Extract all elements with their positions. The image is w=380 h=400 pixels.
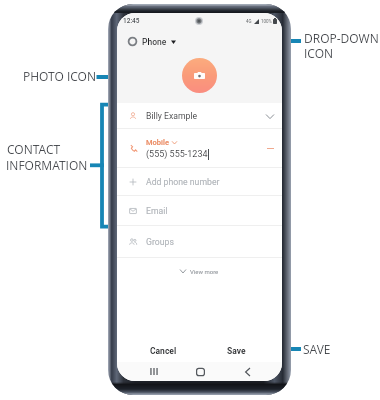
staticText: Email — [146, 206, 168, 216]
staticText: CONTACT — [7, 141, 61, 157]
staticText: ICON — [304, 45, 334, 61]
button[interactable]: Home — [187, 364, 213, 379]
staticText: Groups — [146, 237, 174, 247]
button[interactable]: Recent apps — [141, 364, 167, 379]
button[interactable]: Email — [117, 196, 282, 226]
staticText: Phone — [142, 37, 167, 47]
button[interactable]: Billy Example — [117, 103, 282, 129]
button[interactable]: Add phone number — [117, 168, 282, 196]
staticText: 12:45 — [123, 17, 140, 25]
button[interactable]: Add contact photo — [182, 58, 217, 93]
button[interactable]: Groups — [117, 226, 282, 258]
staticText: Save — [227, 346, 246, 356]
button[interactable]: View more — [117, 258, 282, 284]
button[interactable]: Save — [212, 343, 260, 359]
staticText: SAVE — [303, 341, 331, 357]
button[interactable]: Cancel — [137, 343, 189, 359]
button[interactable]: Phone — [117, 32, 282, 51]
staticText: 100% — [261, 19, 272, 24]
staticText: DROP-DOWN — [304, 30, 379, 46]
staticText: Add phone number — [146, 177, 220, 187]
staticText: PHOTO ICON — [23, 68, 96, 84]
staticText: 4G — [246, 19, 252, 24]
staticText: Cancel — [150, 346, 177, 356]
staticText: Mobile — [146, 138, 169, 147]
staticText: (555) 555-1234 — [146, 149, 208, 160]
staticText: Billy Example — [146, 111, 198, 121]
button[interactable]: Mobile — [117, 129, 282, 168]
button[interactable]: Back — [234, 364, 260, 379]
staticText: INFORMATION — [6, 157, 88, 173]
staticText: View more — [190, 268, 219, 275]
